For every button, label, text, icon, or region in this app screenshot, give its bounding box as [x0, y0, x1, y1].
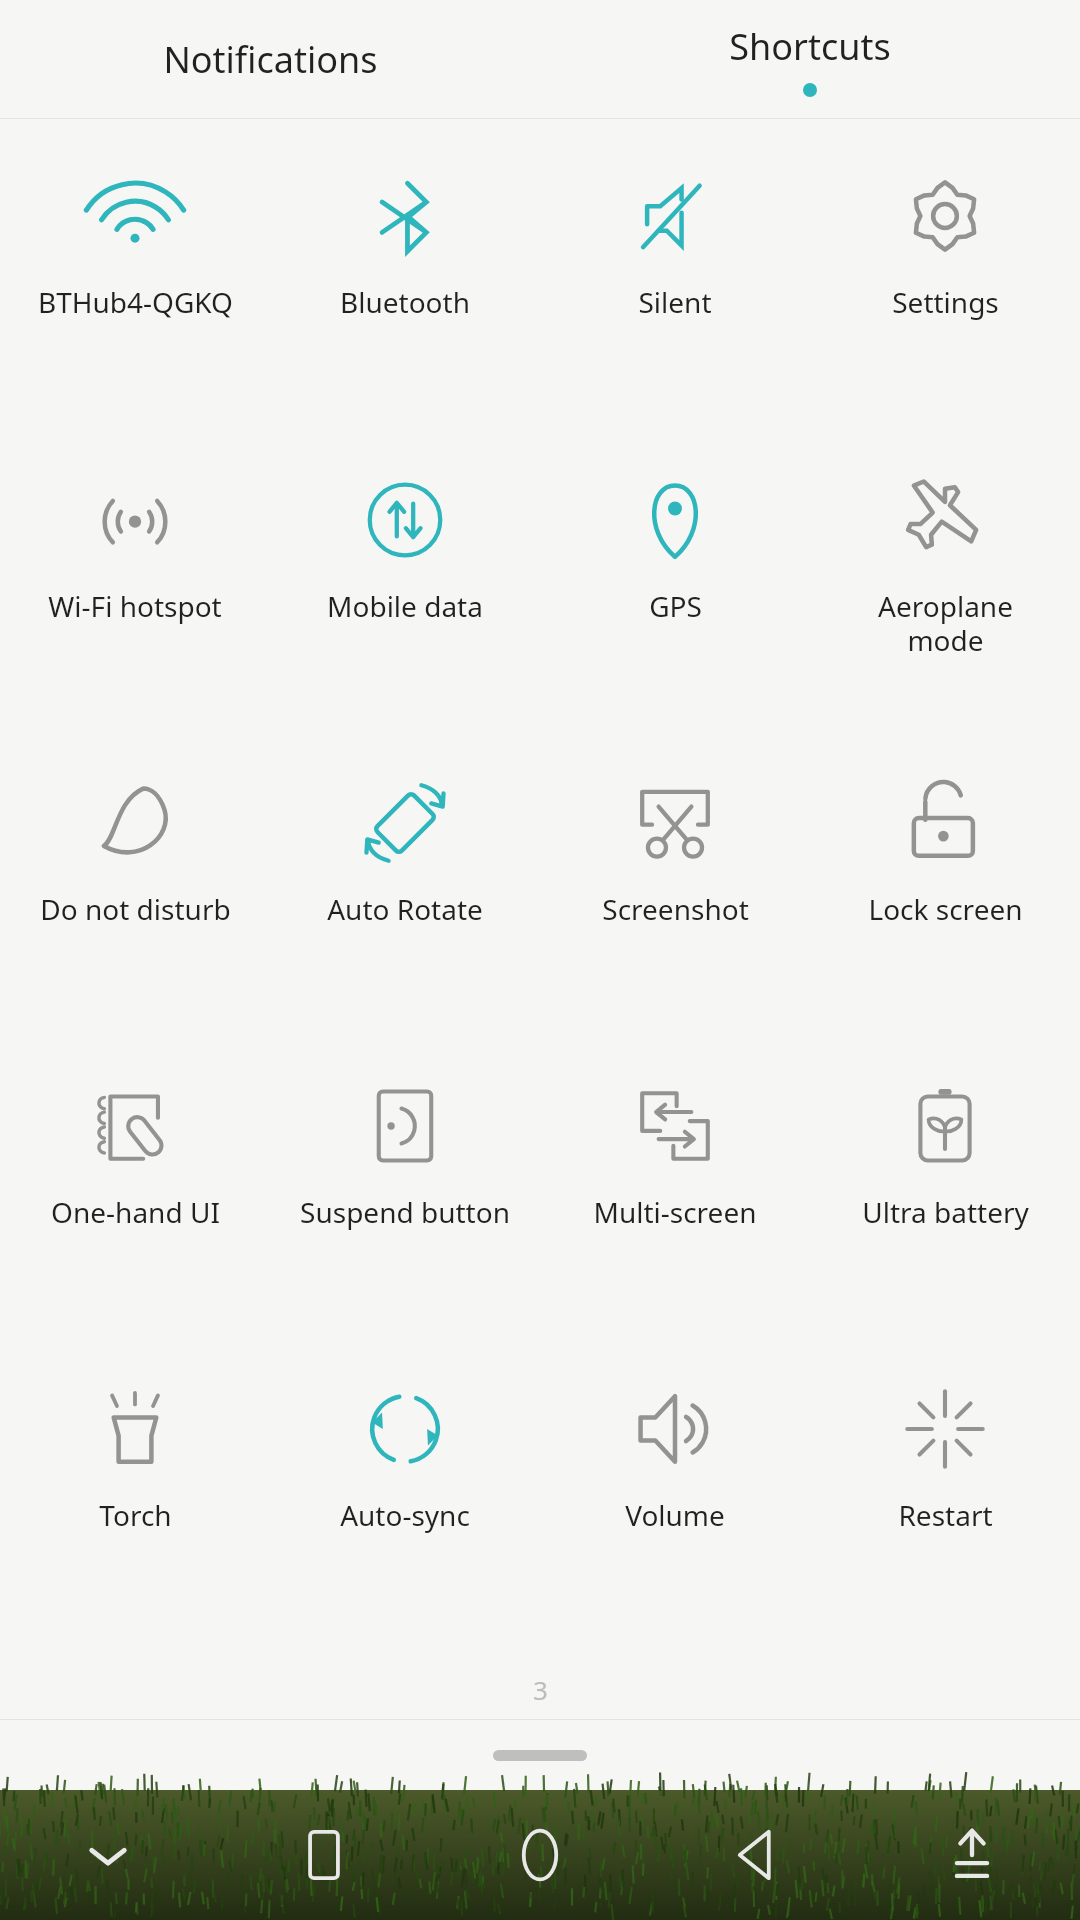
button[interactable]: Torch: [0, 1346, 270, 1649]
button[interactable]: Lock screen: [810, 740, 1080, 1043]
button[interactable]: Home: [432, 1790, 648, 1920]
staticText: Volume: [625, 1496, 725, 1534]
staticText: Aeroplane mode: [878, 587, 1013, 659]
button[interactable]: Auto Rotate: [270, 740, 540, 1043]
button[interactable]: Hide: [0, 1790, 216, 1920]
button[interactable]: Restart: [810, 1346, 1080, 1649]
button[interactable]: Auto-sync: [270, 1346, 540, 1649]
button[interactable]: BTHub4-QGKQ: [0, 133, 270, 437]
button[interactable]: GPS: [540, 437, 810, 740]
staticText: Shortcuts: [729, 22, 891, 71]
button[interactable]: Back: [648, 1790, 864, 1920]
staticText: Suspend button: [300, 1193, 510, 1231]
staticText: Mobile data: [327, 587, 483, 625]
staticText: GPS: [649, 587, 702, 625]
button[interactable]: Shortcuts: [540, 0, 1080, 118]
button[interactable]: Volume: [540, 1346, 810, 1649]
button[interactable]: Aeroplane mode: [810, 437, 1080, 740]
button[interactable]: Multi-screen: [540, 1043, 810, 1346]
staticText: Do not disturb: [40, 890, 231, 928]
staticText: Notifications: [163, 35, 378, 84]
button[interactable]: Settings: [810, 133, 1080, 437]
button[interactable]: Pin screen: [864, 1790, 1080, 1920]
staticText: BTHub4-QGKQ: [38, 283, 233, 321]
staticText: Silent: [638, 283, 712, 321]
button[interactable]: Bluetooth: [270, 133, 540, 437]
staticText: Multi-screen: [593, 1193, 757, 1231]
staticText: Screenshot: [602, 890, 749, 928]
staticText: Wi-Fi hotspot: [48, 587, 222, 625]
button[interactable]: Ultra battery: [810, 1043, 1080, 1346]
staticText: Auto-sync: [340, 1496, 470, 1534]
button[interactable]: Mobile data: [270, 437, 540, 740]
staticText: Torch: [99, 1496, 172, 1534]
staticText: Settings: [892, 283, 999, 321]
button[interactable]: Screenshot: [540, 740, 810, 1043]
button[interactable]: Do not disturb: [0, 740, 270, 1043]
button[interactable]: Suspend button: [270, 1043, 540, 1346]
staticText: Lock screen: [868, 890, 1023, 928]
staticText: 3: [533, 1672, 548, 1707]
button[interactable]: Collapse panel: [493, 1750, 587, 1761]
button[interactable]: One-hand UI: [0, 1043, 270, 1346]
staticText: Auto Rotate: [327, 890, 483, 928]
staticText: Ultra battery: [862, 1193, 1029, 1231]
button[interactable]: Notifications: [0, 0, 540, 118]
staticText: Restart: [898, 1496, 993, 1534]
staticText: One-hand UI: [51, 1193, 220, 1231]
button[interactable]: Silent: [540, 133, 810, 437]
staticText: Bluetooth: [340, 283, 470, 321]
button[interactable]: Wi-Fi hotspot: [0, 437, 270, 740]
button[interactable]: Recents: [216, 1790, 432, 1920]
